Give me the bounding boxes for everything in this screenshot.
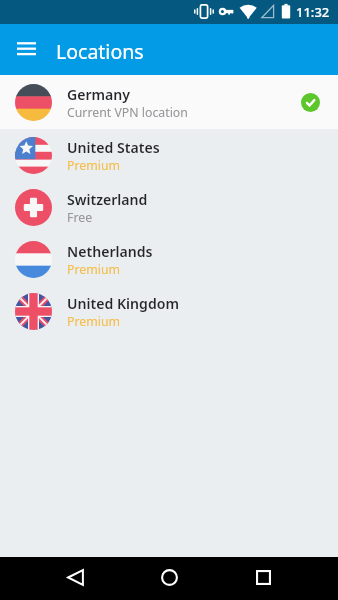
staticText: Locations	[56, 38, 144, 65]
button[interactable]: Back	[57, 559, 93, 595]
staticText: United States	[67, 138, 160, 157]
button[interactable]: Switzerland	[0, 181, 338, 233]
staticText: Current VPN location	[67, 104, 188, 121]
staticText: Germany	[67, 85, 131, 104]
button[interactable]: Germany	[0, 75, 338, 129]
button[interactable]: United Kingdom	[0, 285, 338, 337]
staticText: United Kingdom	[67, 294, 179, 313]
staticText: Switzerland	[67, 190, 148, 209]
button[interactable]: Home	[151, 559, 187, 595]
button[interactable]: Recent apps	[245, 559, 281, 595]
button[interactable]: Open navigation menu	[8, 31, 44, 67]
button[interactable]: Netherlands	[0, 233, 338, 285]
staticText: Free	[67, 209, 93, 226]
staticText: Netherlands	[67, 242, 153, 261]
button[interactable]: United States	[0, 129, 338, 181]
staticText: 11:32	[296, 3, 330, 21]
staticText: Premium	[67, 313, 120, 330]
staticText: Premium	[67, 261, 120, 278]
staticText: Premium	[67, 157, 120, 174]
